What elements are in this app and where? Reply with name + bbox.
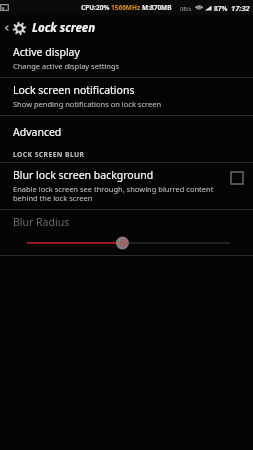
staticText: Active display: [13, 45, 80, 59]
staticText: 0B/s: [180, 5, 192, 12]
button[interactable]: Back to settings: [0, 15, 253, 40]
staticText: Lock screen: [32, 20, 96, 36]
staticText: 1566MHz: [111, 3, 142, 12]
button[interactable]: Blur lock screen background: [0, 163, 253, 209]
staticText: Blur lock screen background: [13, 168, 154, 182]
staticText: 87%: [214, 4, 228, 13]
button[interactable]: Active display: [0, 40, 253, 77]
button[interactable]: Blur Radius: [0, 210, 253, 255]
staticText: Advanced: [13, 125, 62, 139]
staticText: Blur Radius: [13, 215, 70, 229]
staticText: 17:32: [231, 3, 250, 13]
staticText: CPU:20%: [81, 3, 111, 12]
button[interactable]: Lock screen notifications: [0, 78, 253, 115]
button[interactable]: Advanced: [0, 116, 253, 150]
staticText: Show pending notifications on lock scree…: [13, 99, 162, 109]
staticText: Lock screen notifications: [13, 83, 135, 97]
staticText: Enable lock screen see through, showing …: [13, 184, 225, 204]
staticText: Change active display settings: [13, 61, 120, 71]
staticText: M:870MB: [142, 3, 172, 12]
staticText: LOCK SCREEN BLUR: [13, 150, 85, 159]
